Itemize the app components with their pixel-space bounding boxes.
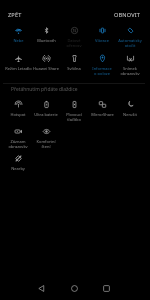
button[interactable]: Nerušit: [116, 94, 144, 121]
staticText: Režim Letadlo: [5, 66, 32, 71]
staticText: Záznam obrazovky: [8, 139, 28, 148]
button[interactable]: Režim Letadlo: [4, 48, 32, 75]
staticText: Snímek obrazovky: [120, 66, 140, 75]
staticText: Nebe: [13, 38, 24, 43]
staticText: Datové přenosy: [66, 38, 82, 47]
staticText: Komfortní čtení: [36, 139, 56, 148]
button[interactable]: OBNOVIT: [112, 10, 142, 20]
button[interactable]: Nebe: [4, 20, 32, 47]
button[interactable]: ZPĚT: [6, 10, 24, 20]
button[interactable]: Snímek obrazovky: [116, 48, 144, 75]
staticText: OBNOVIT: [114, 11, 140, 19]
staticText: Přetáhnutím přidáte dlaždice: [11, 86, 78, 93]
button[interactable]: Automaticky otočit: [116, 20, 144, 47]
staticText: Nearby: [11, 166, 25, 171]
staticText: Svítilna: [67, 66, 81, 71]
staticText: Ultra baterie: [34, 112, 58, 117]
button[interactable]: Hotspot: [4, 94, 32, 121]
staticText: Nerušit: [123, 112, 137, 117]
button[interactable]: Záznam obrazovky: [4, 121, 32, 148]
staticText: MirrorShare: [91, 112, 114, 117]
button[interactable]: Ultra baterie: [32, 94, 60, 121]
staticText: Huawei Share: [33, 66, 59, 71]
button[interactable]: Plovoucí tlačítko: [60, 94, 88, 121]
staticText: Bluetooth: [37, 38, 56, 43]
button[interactable]: Komfortní čtení: [32, 121, 60, 148]
button[interactable]: MirrorShare: [88, 94, 116, 121]
button[interactable]: Datové přenosy: [60, 20, 88, 47]
button[interactable]: Nearby: [4, 148, 32, 175]
button[interactable]: Home: [65, 279, 83, 297]
staticText: Vibrace: [95, 38, 109, 43]
staticText: Hotspot: [10, 112, 26, 117]
button[interactable]: Recents: [97, 279, 115, 297]
button[interactable]: Back: [32, 279, 50, 297]
button[interactable]: Vibrace: [88, 20, 116, 47]
button[interactable]: Svítilna: [60, 48, 88, 75]
button[interactable]: Huawei Share: [32, 48, 60, 75]
staticText: Informace o poloze: [92, 66, 112, 75]
staticText: Plovoucí tlačítko: [66, 112, 82, 121]
staticText: Automaticky otočit: [118, 38, 142, 47]
staticText: ZPĚT: [8, 11, 22, 19]
button[interactable]: Bluetooth: [32, 20, 60, 47]
button[interactable]: Informace o poloze: [88, 48, 116, 75]
